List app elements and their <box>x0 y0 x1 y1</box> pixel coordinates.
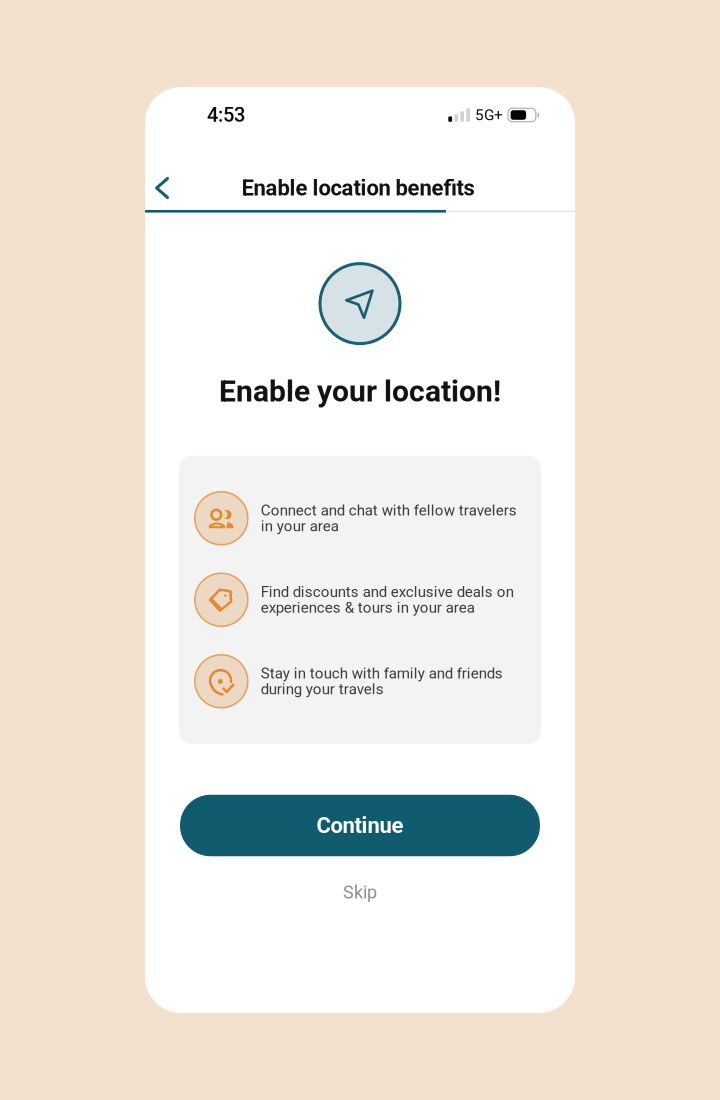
staticText: in your area <box>261 517 339 535</box>
button[interactable]: Skip <box>300 875 420 909</box>
button[interactable]: Back <box>141 166 183 210</box>
staticText: Continue <box>316 813 403 838</box>
button[interactable]: Continue <box>180 795 540 856</box>
staticText: during your travels <box>261 680 384 698</box>
staticText: Enable location benefits <box>241 175 474 201</box>
staticText: 4:53 <box>207 103 245 127</box>
staticText: experiences & tours in your area <box>261 599 475 616</box>
staticText: Connect and chat with fellow travelers <box>261 502 517 519</box>
staticText: 5G+ <box>475 106 503 124</box>
staticText: Skip <box>343 882 377 903</box>
staticText: Find discounts and exclusive deals on <box>261 583 514 601</box>
staticText: Stay in touch with family and friends <box>261 665 503 682</box>
staticText: Enable your location! <box>219 374 501 409</box>
